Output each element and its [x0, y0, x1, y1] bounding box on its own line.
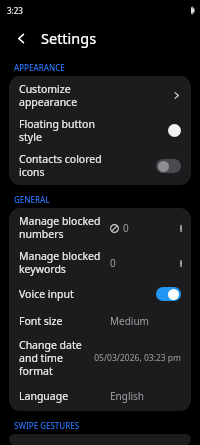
button[interactable]: Manage blocked numbers: [9, 210, 191, 245]
staticText: SWIPE GESTURES: [14, 420, 200, 431]
staticText: Floating button style: [19, 117, 110, 144]
staticText: Customize appearance: [19, 82, 110, 109]
button[interactable]: Contacts colored icons: [9, 148, 191, 183]
staticText: Settings: [41, 28, 190, 48]
staticText: Voice input: [19, 287, 110, 301]
staticText: 3:23: [7, 5, 193, 16]
button[interactable]: Off: [156, 159, 181, 173]
staticText: Manage blocked keywords: [19, 249, 110, 276]
staticText: Language: [19, 389, 110, 403]
staticText: Medium: [110, 314, 181, 328]
button[interactable]: Back: [10, 27, 32, 49]
staticText: 0: [110, 256, 181, 270]
staticText: English: [110, 389, 181, 403]
staticText: 05/03/2026, 03:23 pm: [94, 352, 181, 364]
staticText: Contacts colored icons: [19, 152, 110, 179]
staticText: Change date and time format: [19, 338, 94, 378]
button[interactable]: On: [156, 287, 181, 301]
button[interactable]: Change date and time format: [9, 334, 191, 382]
staticText: 0: [123, 221, 181, 235]
button[interactable]: Floating button style: [9, 113, 191, 148]
staticText: APPEARANCE: [14, 62, 200, 73]
staticText: Manage blocked numbers: [19, 214, 110, 241]
button[interactable]: Manage blocked keywords: [9, 245, 191, 280]
staticText: GENERAL: [14, 194, 200, 205]
button[interactable]: Customize appearance: [9, 78, 191, 113]
button[interactable]: Language: [9, 382, 191, 409]
button[interactable]: Voice input: [9, 280, 191, 307]
button[interactable]: Font size: [9, 307, 191, 334]
staticText: Font size: [19, 314, 110, 328]
